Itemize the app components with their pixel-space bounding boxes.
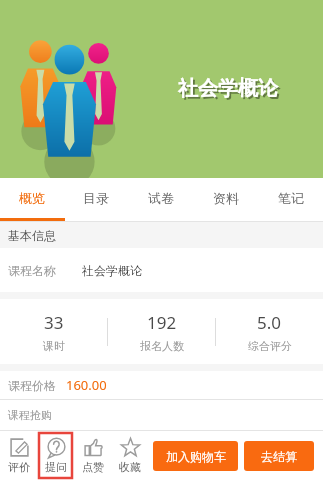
staticText: 综合评分 xyxy=(248,339,292,353)
staticText: 社会学概论 xyxy=(82,263,142,278)
staticText: 基本信息 xyxy=(8,228,56,243)
staticText: 去结算 xyxy=(261,449,297,464)
staticText: 报名人数 xyxy=(140,339,184,353)
button[interactable]: 笔记 xyxy=(258,178,323,218)
button[interactable]: 目录 xyxy=(64,178,128,218)
staticText: 社会学概论 xyxy=(180,78,280,103)
staticText: 课时 xyxy=(43,339,65,353)
staticText: 收藏 xyxy=(119,460,141,474)
staticText: 笔记 xyxy=(278,190,304,206)
staticText: 目录 xyxy=(83,190,109,206)
staticText: 160.00 xyxy=(66,376,107,394)
staticText: 评价 xyxy=(8,460,30,474)
staticText: 概览 xyxy=(19,190,45,206)
staticText: 5.0 xyxy=(257,311,282,334)
button[interactable]: 试卷 xyxy=(128,178,193,218)
staticText: 试卷 xyxy=(148,190,174,206)
staticText: 课程价格 xyxy=(8,378,56,393)
staticText: 33 xyxy=(44,311,64,334)
button[interactable]: 加入购物车 xyxy=(153,441,238,471)
button[interactable]: 概览 xyxy=(0,178,64,218)
button[interactable]: 提问 xyxy=(37,432,74,479)
staticText: 课程名称 xyxy=(8,263,56,278)
staticText: 加入购物车 xyxy=(166,449,226,464)
staticText: 课程抢购 xyxy=(8,408,52,422)
staticText: 提问 xyxy=(45,460,67,474)
button[interactable]: 资料 xyxy=(193,178,258,218)
staticText: 192 xyxy=(147,311,177,334)
staticText: 社会学概论 xyxy=(178,76,278,101)
staticText: 资料 xyxy=(213,190,239,206)
button[interactable]: 点赞 xyxy=(74,432,111,479)
button[interactable]: 去结算 xyxy=(244,441,314,471)
staticText: 点赞 xyxy=(82,460,104,474)
button[interactable]: 评价 xyxy=(0,432,37,479)
button[interactable]: 收藏 xyxy=(111,432,148,479)
